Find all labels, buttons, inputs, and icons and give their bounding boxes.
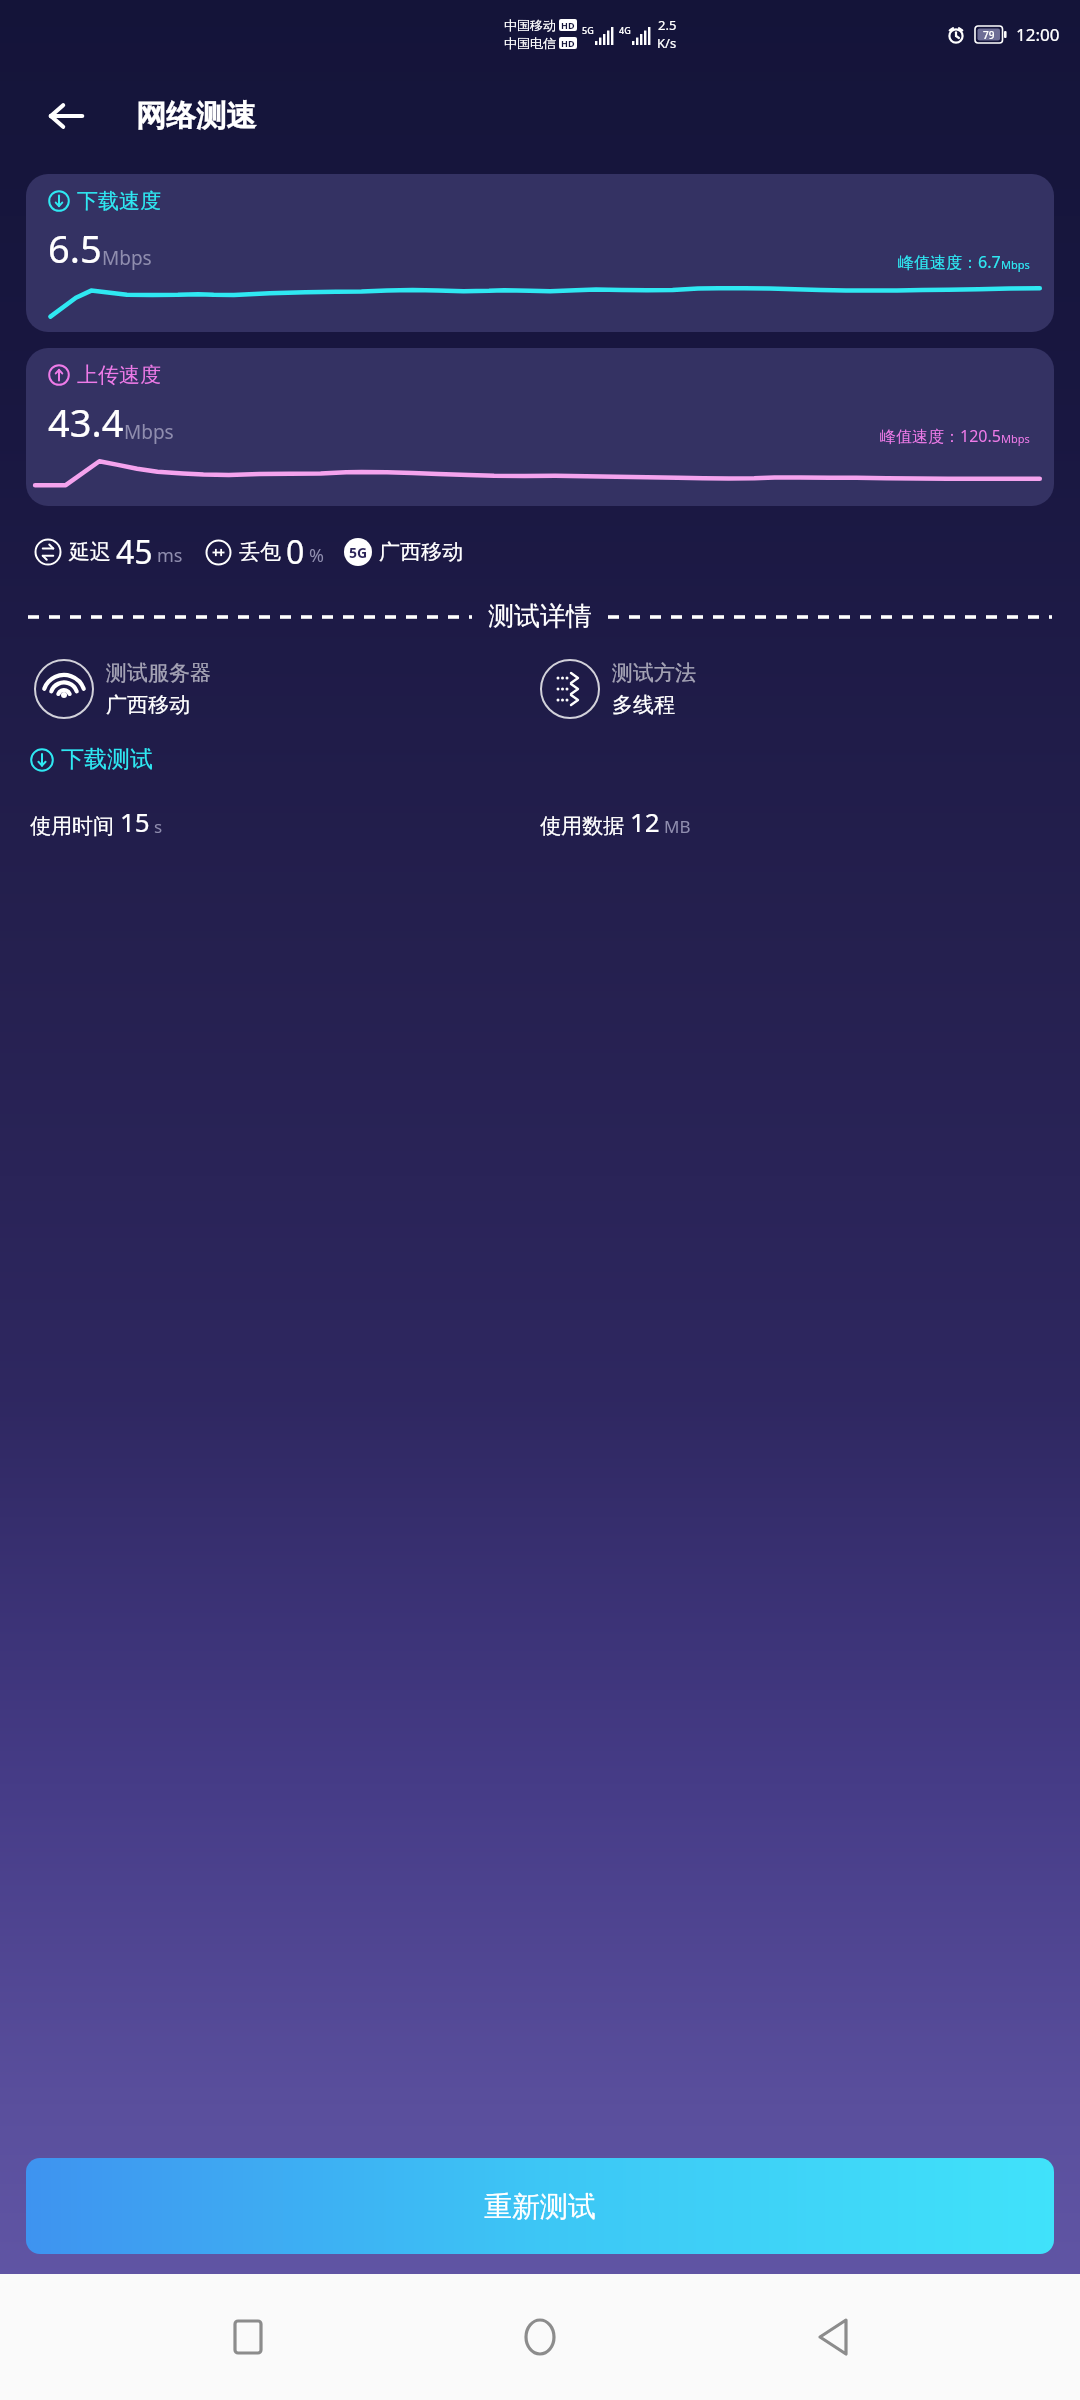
staticText: 79: [983, 28, 995, 42]
staticText: 下载速度: [77, 188, 161, 214]
staticText: 6.5: [48, 222, 102, 274]
staticText: 12: [630, 804, 660, 839]
staticText: ms: [157, 543, 183, 568]
staticText: 网络测速: [136, 97, 256, 135]
staticText: 测试方法: [612, 660, 696, 686]
staticText: 重新测试: [484, 2189, 596, 2224]
staticText: 45: [116, 530, 153, 574]
staticText: 上传速度: [77, 362, 161, 388]
staticText: 下载测试: [61, 745, 153, 774]
button[interactable]: Recents: [203, 2292, 293, 2382]
staticText: 12:00: [1016, 23, 1060, 46]
staticText: 使用时间: [30, 813, 114, 839]
button[interactable]: 测试服务器: [34, 659, 540, 719]
staticText: HD: [561, 37, 575, 49]
button[interactable]: Back: [788, 2292, 878, 2382]
staticText: Mbps: [1001, 257, 1030, 272]
button[interactable]: 重新测试: [26, 2158, 1054, 2254]
staticText: Mbps: [1001, 431, 1030, 446]
staticText: 4G: [619, 24, 631, 36]
staticText: HD: [561, 19, 575, 31]
staticText: 延迟: [69, 539, 111, 565]
staticText: 广西移动: [379, 539, 463, 565]
button[interactable]: 下载速度: [26, 174, 1054, 332]
button[interactable]: 测试方法: [540, 659, 1046, 719]
other: 测试方法: [540, 659, 600, 719]
other: 测试服务器: [34, 659, 94, 719]
staticText: 测试服务器: [106, 660, 211, 686]
staticText: 广西移动: [106, 692, 190, 718]
staticText: MB: [664, 815, 691, 838]
staticText: 使用数据: [540, 813, 624, 839]
staticText: 43.4: [48, 396, 124, 448]
staticText: 15: [120, 804, 150, 839]
staticText: Mbps: [102, 245, 152, 271]
staticText: 多线程: [612, 692, 675, 718]
staticText: 5G: [582, 24, 594, 36]
other: Packet loss: [205, 539, 232, 566]
staticText: 峰值速度：120.5: [880, 425, 1001, 447]
staticText: 0: [286, 530, 305, 574]
staticText: Mbps: [124, 419, 174, 445]
staticText: K/s: [657, 34, 677, 52]
button[interactable]: 上传速度: [26, 348, 1054, 506]
staticText: 中国电信: [504, 35, 556, 51]
staticText: s: [154, 815, 163, 838]
staticText: 测试详情: [488, 600, 592, 633]
staticText: %: [309, 543, 324, 568]
button[interactable]: Back: [38, 88, 94, 144]
staticText: 峰值速度：6.7: [898, 251, 1001, 273]
staticText: 5G: [349, 543, 368, 562]
button[interactable]: Home: [495, 2292, 585, 2382]
staticText: 丢包: [239, 539, 281, 565]
other: Latency: [34, 538, 62, 566]
staticText: 中国移动: [504, 17, 556, 33]
staticText: 2.5: [658, 16, 677, 34]
